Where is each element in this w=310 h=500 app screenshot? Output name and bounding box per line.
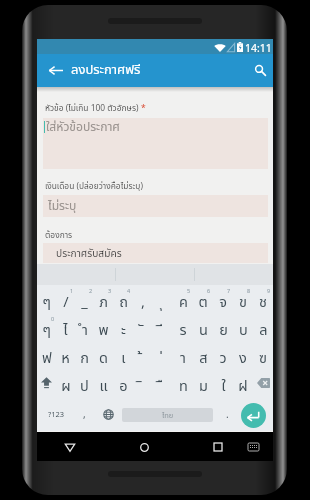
staticText: ใส่หัวข้อประกาศ [46, 118, 120, 136]
button[interactable]: ฝ [233, 369, 253, 397]
staticText: 6 [207, 287, 211, 295]
button[interactable]: ใ [213, 369, 233, 397]
button[interactable]: ะ [113, 313, 133, 341]
staticText: ๆ [42, 320, 51, 342]
button[interactable]: ฃ [253, 341, 273, 369]
button[interactable]: ร [173, 313, 193, 341]
button[interactable]: ำ [75, 313, 94, 341]
button[interactable]: 0 [37, 313, 56, 341]
button[interactable]: ล [253, 313, 273, 341]
staticText: 5 [187, 287, 191, 295]
button[interactable]: . [215, 397, 239, 431]
staticText: ถ [119, 292, 128, 314]
staticText: ง [239, 348, 247, 370]
button[interactable]: Switch keyboard [243, 437, 263, 457]
button[interactable]: ?123 [39, 397, 73, 431]
button[interactable]: 9 [253, 285, 273, 313]
staticText: ฃ [259, 348, 267, 370]
staticText: ไ [63, 320, 68, 342]
button[interactable]: 1 [56, 285, 75, 313]
button[interactable]: , [72, 397, 96, 431]
button[interactable]: ผ [56, 369, 75, 397]
staticText: * [141, 102, 146, 115]
button[interactable]: Enter [241, 403, 266, 428]
button[interactable]: ี [153, 313, 173, 341]
staticText: 0 [51, 315, 55, 323]
button[interactable]: ่ [153, 341, 173, 369]
button[interactable]: ก [75, 341, 94, 369]
button[interactable]: พ [94, 313, 113, 341]
button[interactable]: ฟ [37, 341, 56, 369]
staticText: ?123 [48, 409, 65, 420]
button[interactable]: Home [131, 434, 157, 460]
staticText: ห [61, 348, 70, 370]
button[interactable]: ประกาศรับสมัคร [43, 243, 268, 263]
button[interactable]: Recent apps [205, 434, 231, 460]
button[interactable]: 2 [75, 285, 94, 313]
staticText: ประกาศรับสมัคร [56, 246, 122, 261]
button[interactable]: 7 [213, 285, 233, 313]
button[interactable]: บ [233, 313, 253, 341]
button[interactable]: ไ [56, 313, 75, 341]
staticText: ลงประกาศฟรี [71, 60, 141, 80]
button[interactable]: ท [173, 369, 193, 397]
staticText: ว [219, 348, 227, 370]
button[interactable]: ื [153, 369, 173, 397]
button[interactable]: ว [213, 341, 233, 369]
button[interactable]: ไทย [122, 408, 213, 422]
button[interactable]: ิ [133, 369, 153, 397]
button[interactable]: ง [233, 341, 253, 369]
staticText: ค [179, 292, 188, 314]
button[interactable]: ๆ [37, 285, 56, 313]
button[interactable]: ส [193, 341, 213, 369]
staticText: เงินเดือน (ปล่อยว่างคือไม่ระบุ) [45, 180, 143, 193]
button[interactable]: Backspace [253, 369, 273, 397]
staticText: ๆ [42, 292, 51, 314]
button[interactable]: 6 [193, 285, 213, 313]
staticText: . [226, 407, 229, 422]
staticText: ข [239, 292, 247, 314]
button[interactable]: ้ [133, 341, 153, 369]
button[interactable]: 3 [94, 285, 113, 313]
button[interactable]: 4 [113, 285, 133, 313]
button[interactable]: ม [193, 369, 213, 397]
button[interactable]: น [193, 313, 213, 341]
staticText: 3 [108, 287, 112, 295]
button[interactable]: Back [41, 54, 71, 87]
button[interactable]: Change language [96, 397, 120, 431]
staticText: , [141, 292, 145, 314]
staticText: ใ [221, 376, 226, 398]
button[interactable]: แ [94, 369, 113, 397]
button[interactable]: 5 [173, 285, 193, 313]
button[interactable]: Shift [37, 369, 56, 397]
button[interactable]: Search [247, 54, 273, 87]
button[interactable]: Back [57, 434, 83, 460]
button[interactable]: ย [213, 313, 233, 341]
button[interactable]: ด [94, 341, 113, 369]
staticText: ท [179, 376, 188, 398]
staticText: 14:11 [245, 41, 272, 56]
staticText: น [199, 320, 208, 342]
staticText: แ [99, 376, 108, 398]
button[interactable]: , [133, 285, 153, 313]
button[interactable]: อ [113, 369, 133, 397]
button[interactable]: เ [113, 341, 133, 369]
staticText: 9 [267, 287, 271, 295]
button[interactable]: ไม่ระบุ [43, 195, 268, 217]
staticText: ก [80, 348, 89, 370]
button[interactable]: ป [75, 369, 94, 397]
staticText: ป [80, 376, 89, 398]
button[interactable]: า [173, 341, 193, 369]
button[interactable]: ั [133, 313, 153, 341]
button[interactable]: ใส่หัวข้อประกาศ [43, 118, 268, 169]
button[interactable]: 8 [233, 285, 253, 313]
button[interactable]: ุ [153, 285, 173, 313]
staticText: _ [81, 292, 88, 314]
staticText: ไทย [162, 410, 174, 421]
staticText: ผ [61, 376, 71, 398]
button[interactable]: ห [56, 341, 75, 369]
staticText: ม [199, 376, 208, 398]
